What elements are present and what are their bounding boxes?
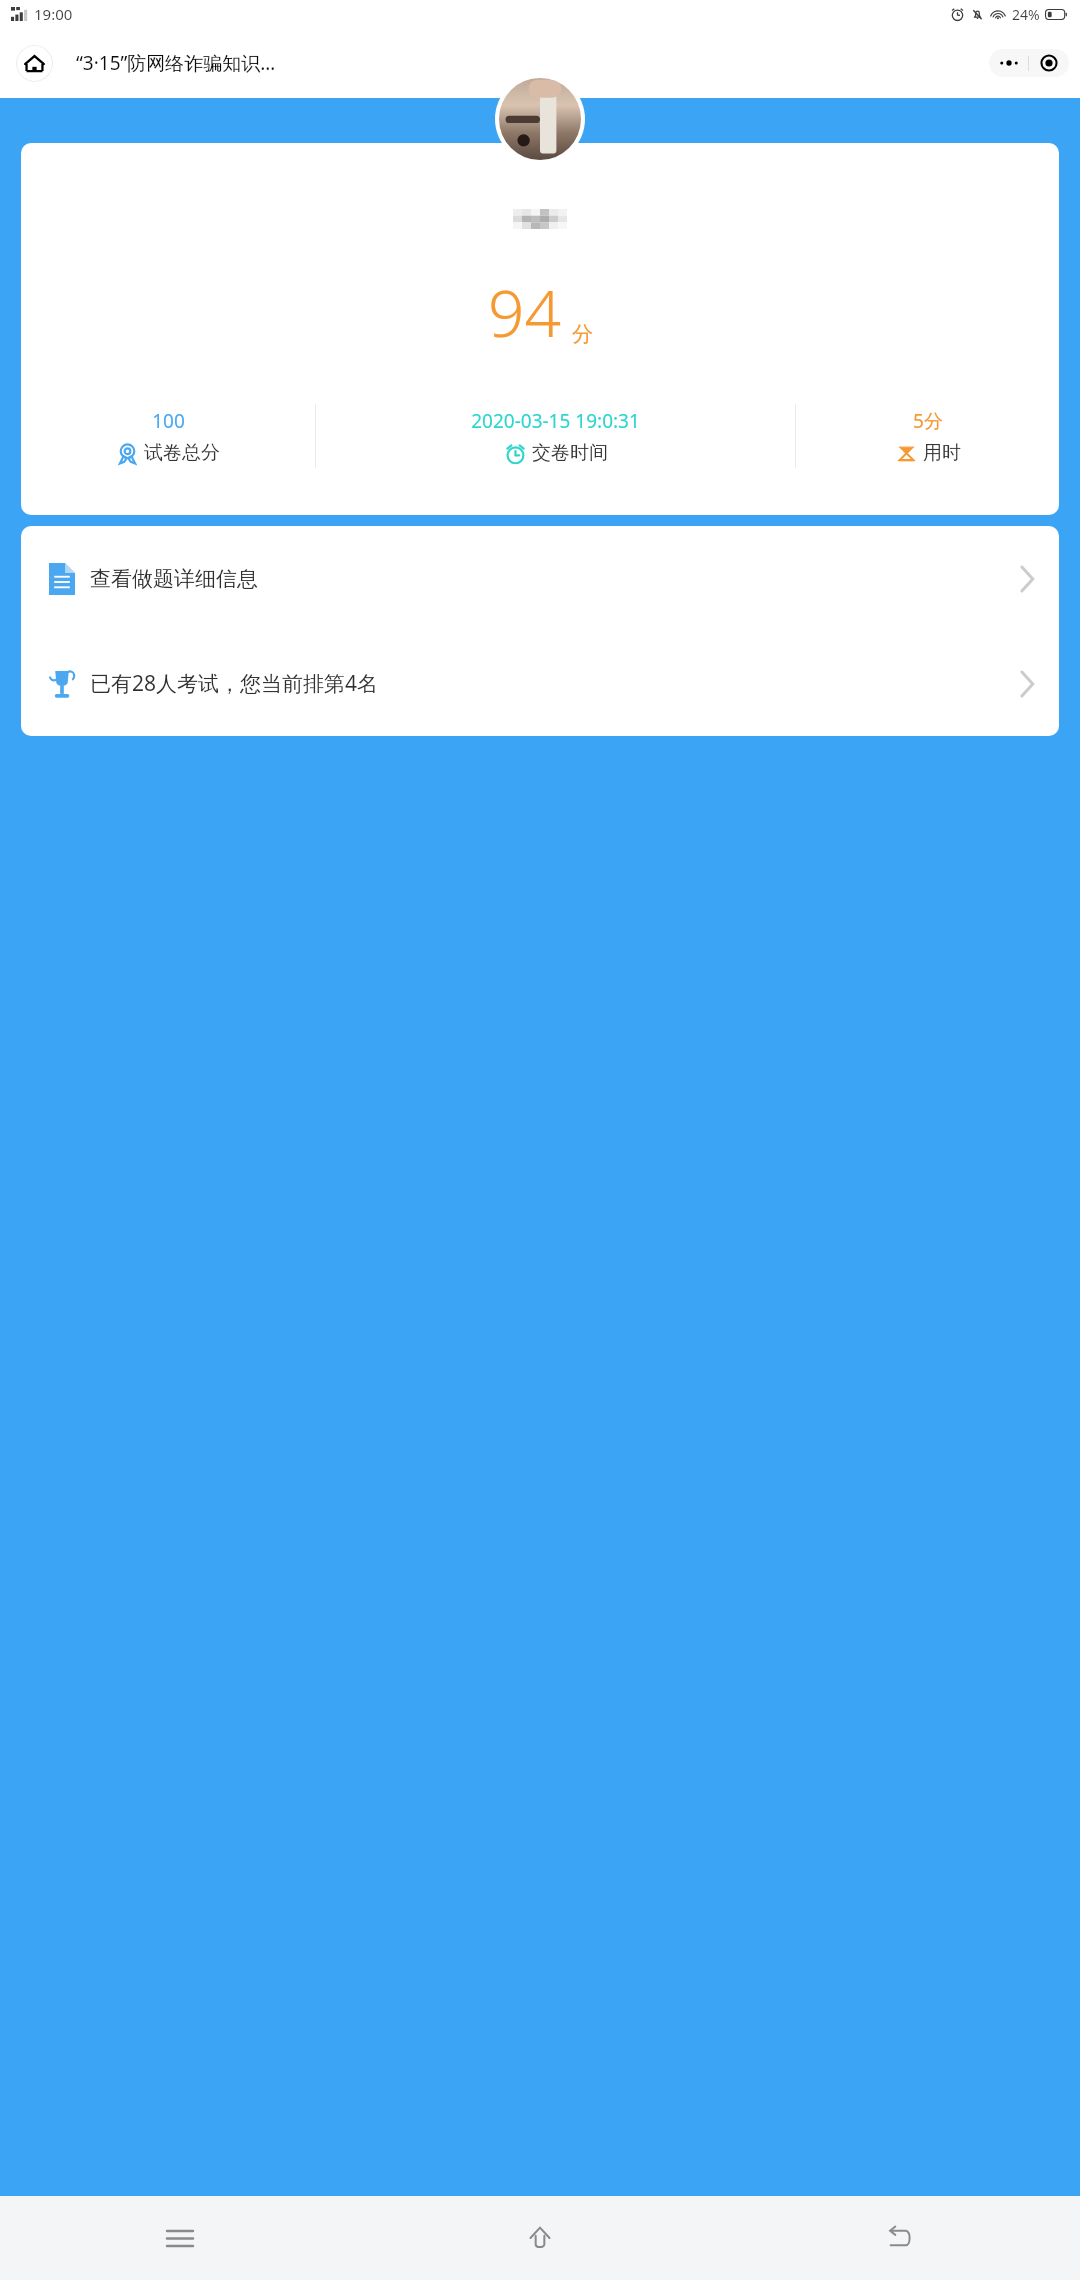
button[interactable]: 2020-03-15 19:0:31 [316,400,795,472]
button[interactable]: More [989,49,1028,77]
staticText: 94 [488,269,562,356]
button[interactable]: Home [16,45,53,82]
staticText: “3·15”防网络诈骗知识… [76,50,276,76]
staticText: 交卷时间 [532,441,608,465]
button[interactable]: 5分 [796,400,1059,472]
button[interactable]: Recents [0,2196,360,2280]
staticText: 24% [1012,5,1040,24]
button[interactable]: 已有28人考试，您当前排第4名 [21,631,1059,736]
staticText: 试卷总分 [144,441,220,465]
button[interactable]: 100 [21,400,315,472]
button[interactable]: Home [360,2196,720,2280]
staticText: 2020-03-15 19:0:31 [471,408,640,434]
staticText: 已有28人考试，您当前排第4名 [90,669,379,698]
button[interactable]: Close [1029,49,1069,77]
staticText: 19:00 [34,4,73,24]
staticText: 5分 [913,408,943,434]
staticText: 查看做题详细信息 [90,566,258,592]
button[interactable]: 查看做题详细信息 [21,526,1059,631]
staticText: 用时 [923,441,961,465]
staticText: 分 [572,321,593,347]
button[interactable]: Back [720,2196,1080,2280]
staticText: 100 [152,408,185,434]
